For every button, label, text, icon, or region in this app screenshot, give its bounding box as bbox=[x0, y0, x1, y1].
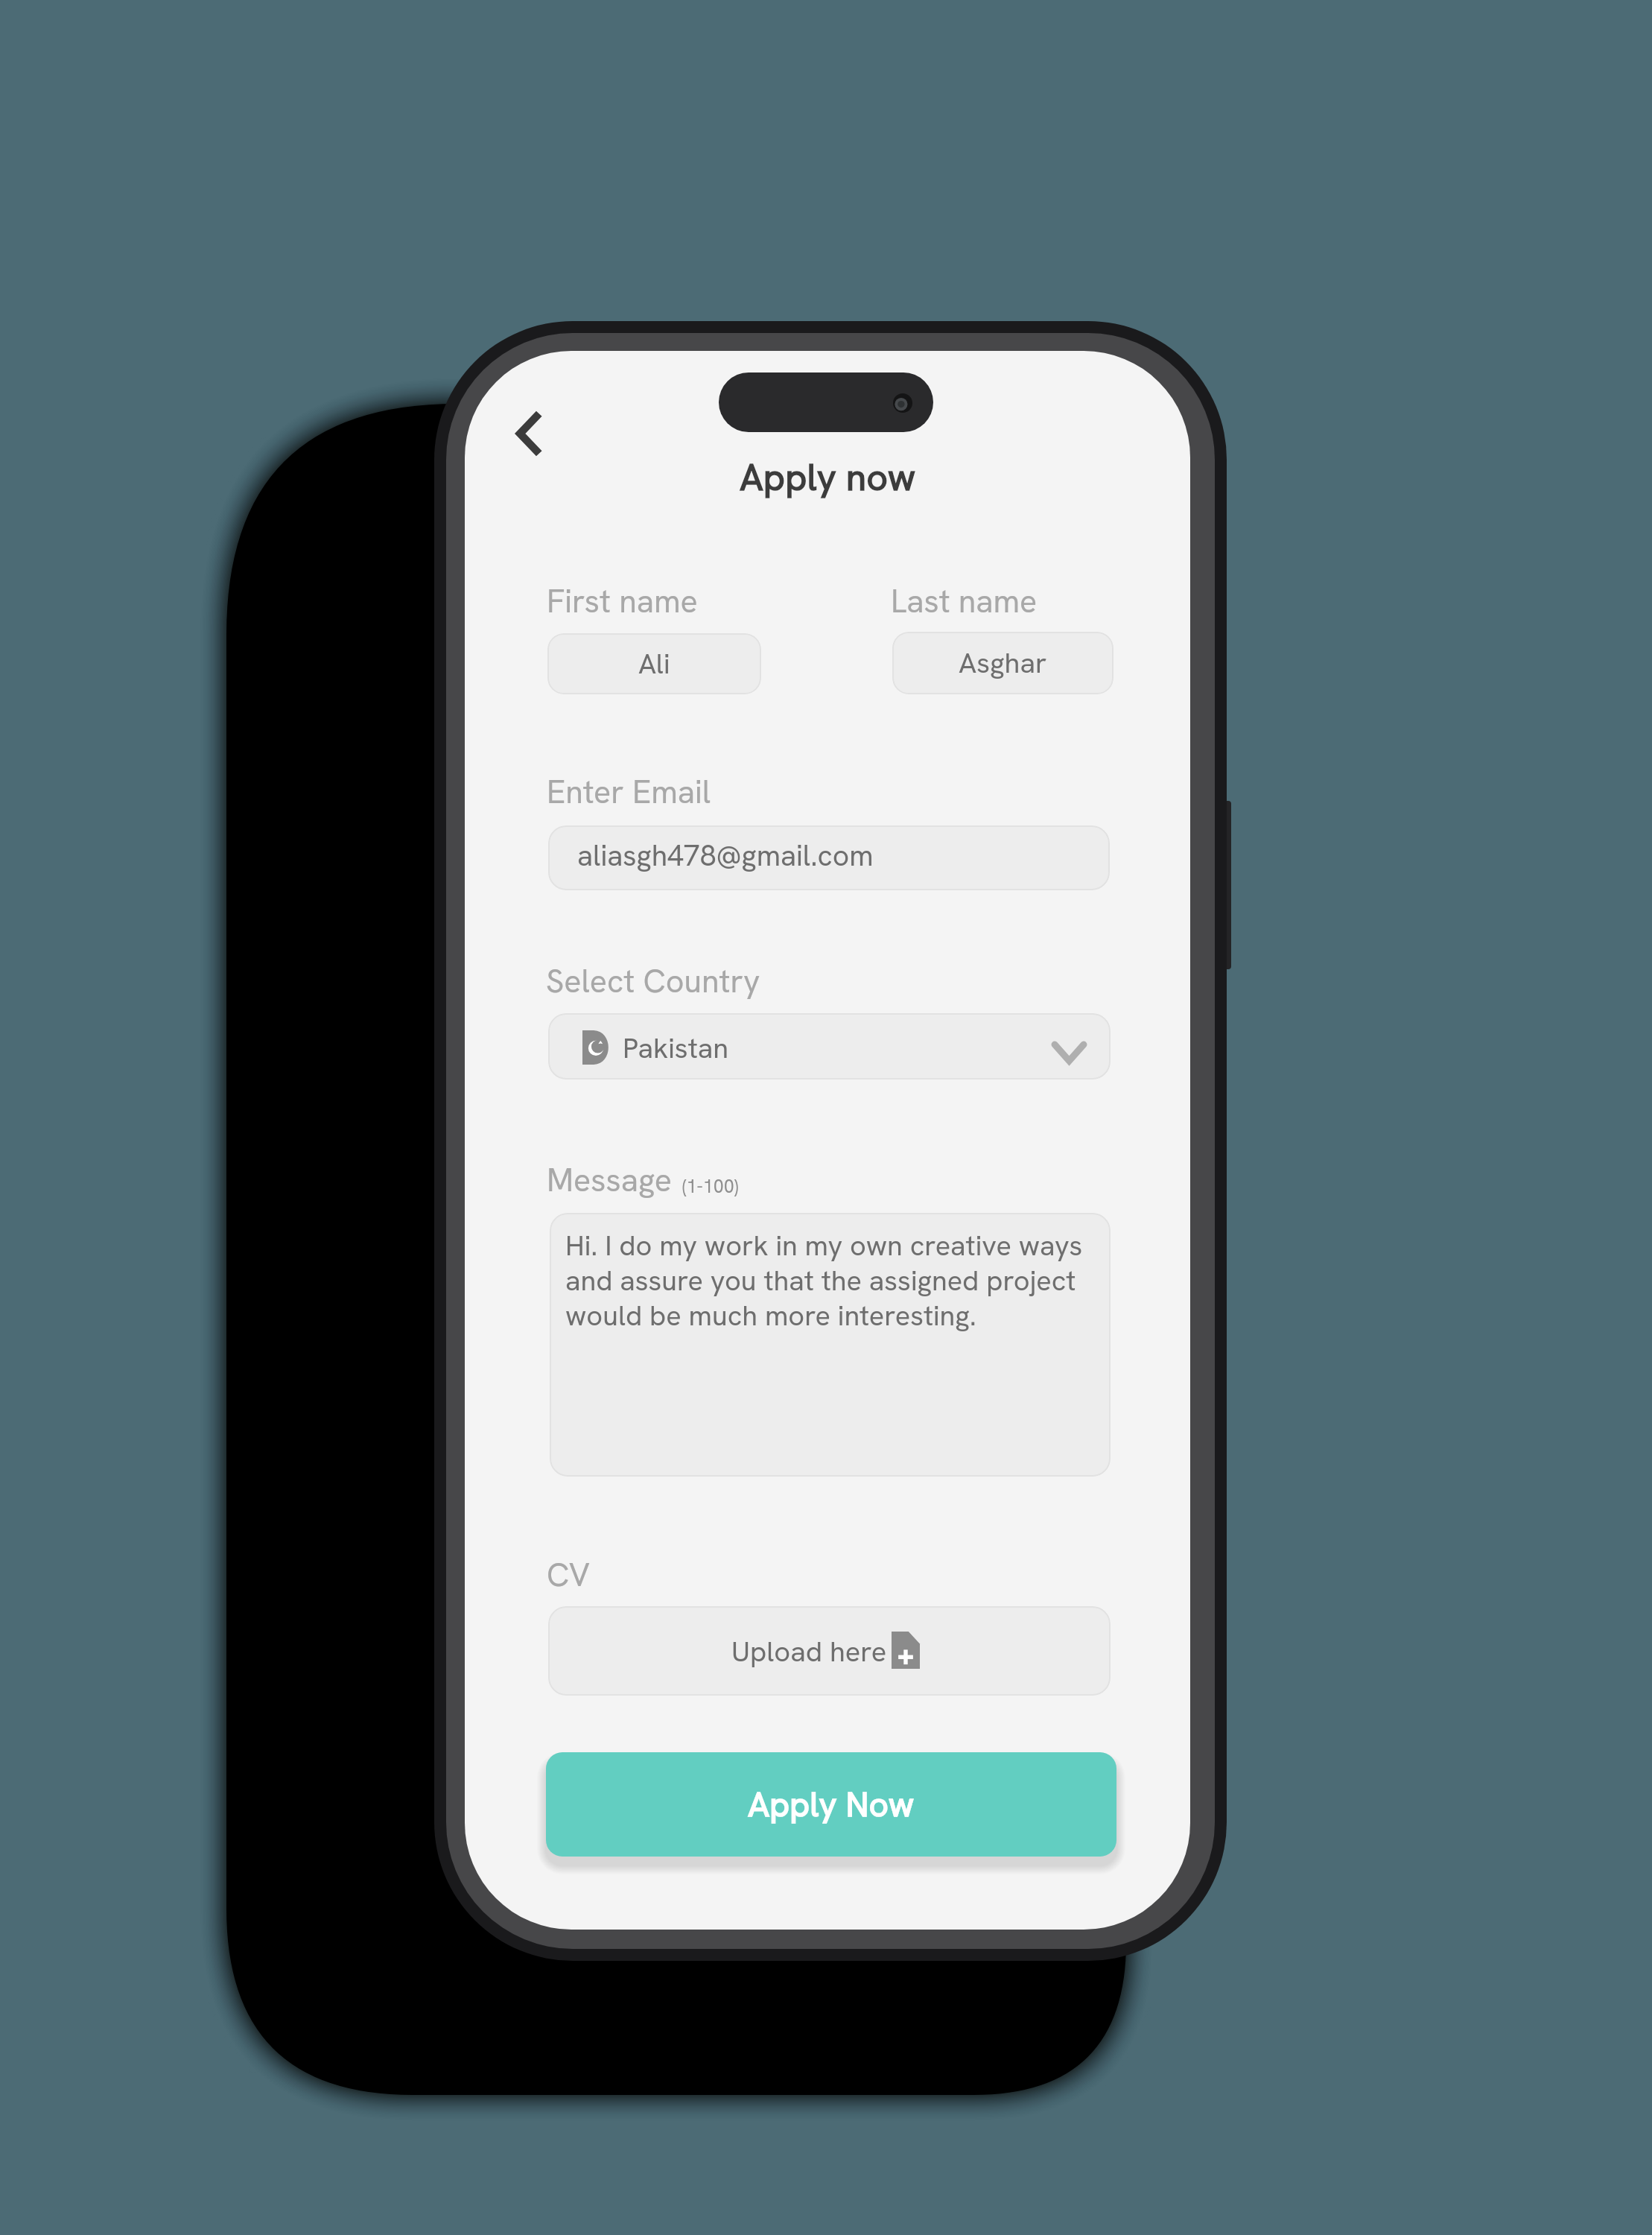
staticText: Pakistan bbox=[623, 1030, 729, 1067]
staticText: Message bbox=[547, 1159, 672, 1201]
staticText: CV bbox=[547, 1554, 590, 1596]
staticText: Apply now bbox=[740, 453, 916, 501]
staticText: Select Country bbox=[546, 960, 760, 1002]
button[interactable]: Pakistan bbox=[548, 1013, 1111, 1080]
staticText: Asghar bbox=[959, 644, 1047, 682]
button[interactable]: Asghar bbox=[892, 632, 1113, 694]
staticText: Ali bbox=[638, 645, 670, 682]
staticText: Enter Email bbox=[547, 771, 711, 813]
staticText: Apply Now bbox=[748, 1782, 915, 1827]
button[interactable]: aliasgh478@gmail.com bbox=[548, 825, 1110, 890]
staticText: First name bbox=[547, 580, 698, 622]
button[interactable]: Apply Now bbox=[546, 1752, 1116, 1857]
staticText: Upload here bbox=[731, 1633, 887, 1670]
staticText: (1-100) bbox=[682, 1174, 739, 1199]
button[interactable]: Hi. I do my work in my own creative ways… bbox=[550, 1213, 1111, 1477]
button[interactable]: Upload here bbox=[548, 1606, 1111, 1696]
staticText: aliasgh478@gmail.com bbox=[577, 837, 874, 875]
button[interactable]: Ali bbox=[547, 633, 761, 694]
staticText: Hi. I do my work in my own creative ways… bbox=[565, 1227, 1083, 1334]
button[interactable]: Back bbox=[492, 385, 566, 481]
staticText: Last name bbox=[891, 580, 1038, 622]
